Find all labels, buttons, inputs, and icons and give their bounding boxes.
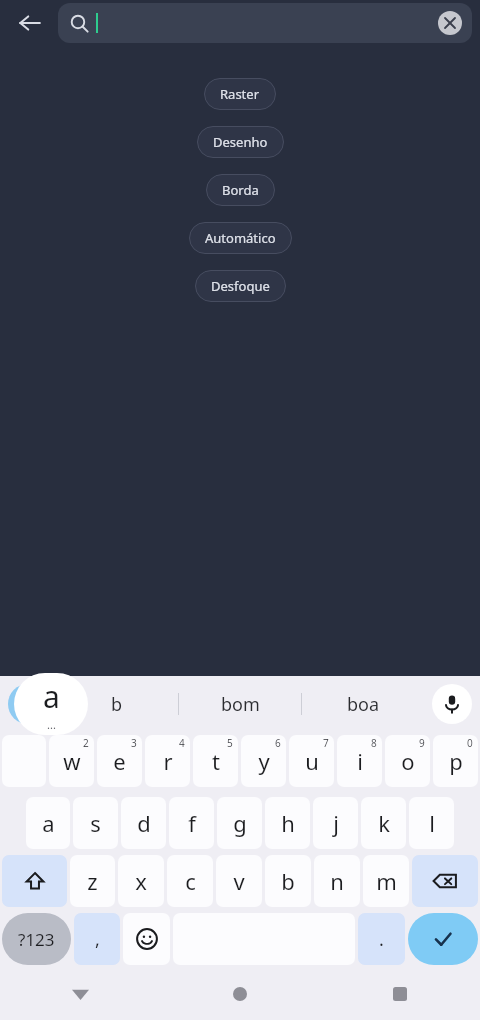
staticText: y [258,746,270,776]
staticText: . [379,927,384,952]
staticText: i [357,746,363,776]
button[interactable]: n [314,855,360,907]
staticText: 9 [419,736,425,750]
button[interactable]: b [56,676,178,732]
button[interactable]: Home [160,968,320,1020]
button[interactable]: j [313,797,358,849]
staticText: Borda [222,181,259,199]
button[interactable]: w [49,735,94,787]
button[interactable]: o [385,735,430,787]
button[interactable]: Desenho [197,126,284,158]
button[interactable]: Raster [204,78,276,110]
staticText: Desfoque [211,277,270,295]
button[interactable]: l [409,797,454,849]
button[interactable]: Shift [2,855,67,907]
staticText: h [281,808,295,838]
button[interactable]: Toolbar [8,684,48,724]
staticText: c [185,866,196,896]
staticText: Raster [220,85,260,103]
staticText: k [378,808,390,838]
staticText: n [330,866,344,896]
staticText: ?123 [18,928,55,951]
button[interactable]: boa [302,676,424,732]
staticText: 4 [179,736,185,750]
button[interactable]: c [167,855,213,907]
button[interactable]: e [97,735,142,787]
button[interactable]: u [289,735,334,787]
button[interactable]: Clear [438,11,462,35]
button[interactable]: x [118,855,164,907]
staticText: bom [221,692,260,717]
staticText: r [163,746,173,776]
button[interactable]: h [265,797,310,849]
staticText: z [87,866,98,896]
staticText: Desenho [213,133,268,151]
staticText: 2 [83,736,89,750]
staticText: o [401,746,415,776]
button[interactable]: r [145,735,190,787]
staticText: m [376,866,397,896]
button[interactable]: , [74,913,120,965]
staticText: p [449,746,463,776]
button[interactable]: v [216,855,262,907]
staticText: Automático [205,229,276,247]
button[interactable]: s [73,797,118,849]
staticText: ... [47,717,56,732]
button[interactable]: ?123 [2,913,71,965]
staticText: 6 [275,736,281,750]
button[interactable]: i [337,735,382,787]
button[interactable]: Back [8,1,52,45]
staticText: g [233,808,247,838]
staticText: s [90,808,101,838]
button[interactable]: g [217,797,262,849]
button[interactable]: t [193,735,238,787]
staticText: e [113,746,126,776]
staticText: u [305,746,319,776]
button[interactable]: f [169,797,214,849]
staticText: , [95,927,100,952]
button[interactable]: z [70,855,115,907]
button[interactable]: Clear [58,3,472,43]
button[interactable]: Recents [320,968,480,1020]
staticText: v [233,866,245,896]
button[interactable]: p [433,735,478,787]
staticText: 7 [323,736,329,750]
staticText: w [63,746,81,776]
button[interactable]: Enter [408,913,478,965]
button[interactable]: . [358,913,405,965]
staticText: t [212,746,220,776]
button[interactable]: y [241,735,286,787]
button[interactable]: Back [0,968,160,1020]
button[interactable]: bom [179,676,301,732]
button[interactable]: Backspace [412,855,478,907]
staticText: 0 [467,736,473,750]
staticText: b [111,692,123,717]
button[interactable]: d [121,797,166,849]
staticText: f [188,808,196,838]
staticText: a [42,808,55,838]
staticText: l [429,808,435,838]
button[interactable]: a [26,797,70,849]
staticText: b [281,866,295,896]
button[interactable]: Automático [189,222,292,254]
staticText: 5 [227,736,233,750]
button[interactable]: Borda [206,174,275,206]
staticText: j [333,808,339,838]
button[interactable]: Emoji [123,913,170,965]
button[interactable]: Voice input [432,684,472,724]
staticText: 3 [131,736,137,750]
staticText: d [137,808,151,838]
button[interactable]: b [265,855,311,907]
staticText: 8 [371,736,377,750]
button[interactable]: a [14,673,88,735]
button[interactable]: m [363,855,409,907]
staticText: a [43,676,60,717]
button[interactable]: k [361,797,406,849]
staticText: x [135,866,147,896]
button[interactable]: Desfoque [195,270,286,302]
staticText: boa [347,692,380,717]
